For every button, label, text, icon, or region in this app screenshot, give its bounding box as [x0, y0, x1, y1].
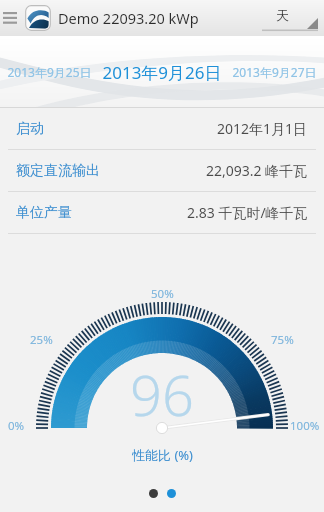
- staticText: 天: [276, 7, 289, 23]
- staticText: 单位产量: [16, 204, 72, 222]
- staticText: 100%: [290, 418, 320, 434]
- button[interactable]: [167, 489, 176, 498]
- button[interactable]: Period selector: day: [262, 4, 318, 32]
- staticText: 启动: [16, 120, 44, 138]
- staticText: 2013年9月26日: [102, 61, 222, 84]
- staticText: 50%: [151, 286, 174, 302]
- button[interactable]: 2013年9月27日: [224, 36, 324, 108]
- button[interactable]: 单位产量: [0, 192, 324, 233]
- staticText: 2013年9月25日: [7, 64, 92, 80]
- staticText: 75%: [271, 332, 294, 348]
- staticText: 25%: [30, 332, 53, 348]
- staticText: 0%: [8, 418, 25, 434]
- staticText: 2013年9月27日: [232, 64, 317, 80]
- button[interactable]: Menu: [0, 0, 20, 36]
- staticText: 额定直流输出: [16, 162, 100, 180]
- button[interactable]: 2013年9月26日: [99, 36, 224, 108]
- staticText: Demo 22093.20 kWp: [58, 8, 199, 28]
- staticText: 96: [130, 356, 194, 432]
- button[interactable]: [149, 489, 158, 498]
- staticText: 2.83 千瓦时/峰千瓦: [187, 203, 308, 222]
- staticText: 22,093.2 峰千瓦: [206, 161, 308, 180]
- button[interactable]: App logo: [24, 4, 52, 32]
- staticText: 性能比 (%): [132, 446, 193, 463]
- button[interactable]: 启动: [0, 108, 324, 149]
- staticText: 2012年1月1日: [217, 119, 308, 138]
- button[interactable]: 额定直流输出: [0, 150, 324, 191]
- button[interactable]: 2013年9月25日: [0, 36, 99, 108]
